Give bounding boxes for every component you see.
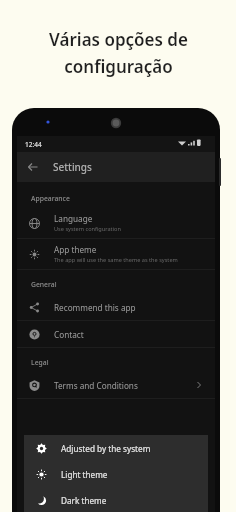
staticText: Appearance [31,194,70,203]
button[interactable]: Terms and Conditions [17,372,215,399]
staticText: 12:44 [25,140,42,149]
staticText: App theme [54,244,97,255]
button[interactable]: Adjusted by the system [36,435,208,461]
staticText: configuração [64,55,173,78]
staticText: Use system configuration [54,225,121,233]
staticText: Contact [54,329,84,340]
staticText: The app will use the same theme as the s… [54,256,178,264]
staticText: Adjusted by the system [61,443,151,454]
staticText: General [31,280,57,289]
staticText: Terms and Conditions [54,380,138,391]
staticText: Settings [53,160,92,174]
button[interactable]: Contact [17,321,215,348]
staticText: Light theme [61,469,108,480]
button[interactable]: Dark theme [36,487,208,512]
button[interactable]: Language [17,208,215,239]
staticText: Várias opções de [49,28,188,51]
staticText: Dark theme [61,495,107,506]
button[interactable]: Back [17,152,215,182]
button[interactable]: App theme [17,239,215,270]
button[interactable]: Back [23,157,43,177]
button[interactable]: Light theme [36,461,208,487]
staticText: Recommend this app [54,302,136,313]
staticText: Legal [31,358,49,367]
button[interactable]: Recommend this app [17,294,215,321]
staticText: Language [54,213,93,224]
